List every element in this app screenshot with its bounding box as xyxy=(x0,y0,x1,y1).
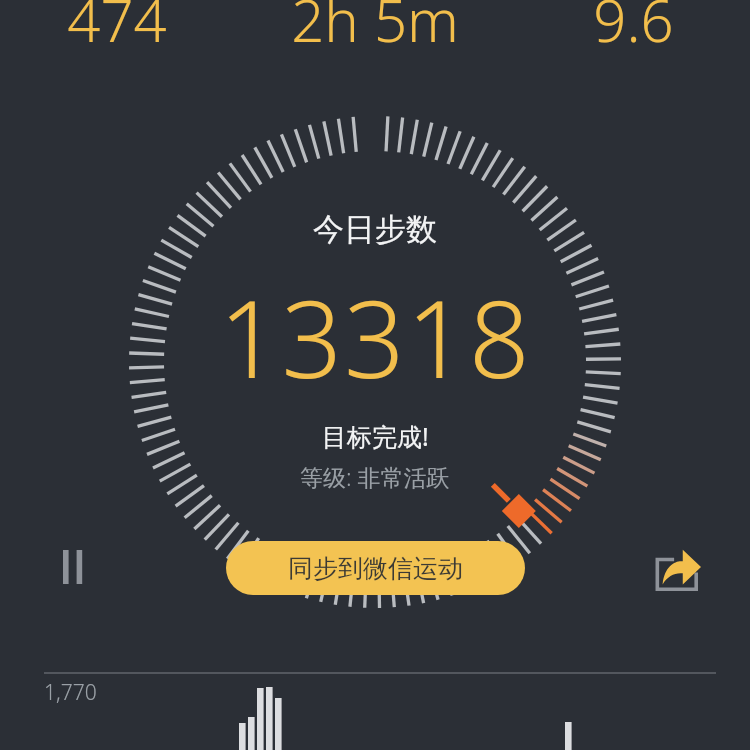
button[interactable]: 同步到微信运动 xyxy=(226,541,525,595)
staticText: 1,770 xyxy=(44,678,97,707)
staticText: 13318 xyxy=(219,265,532,409)
button[interactable]: 474 xyxy=(17,0,217,44)
staticText: 目标完成! xyxy=(322,419,429,453)
staticText: 474 xyxy=(67,0,167,44)
button[interactable]: Share xyxy=(645,538,709,602)
staticText: 今日步数 xyxy=(313,210,437,249)
staticText: 等级: 非常活跃 xyxy=(300,461,450,492)
button[interactable]: Pause xyxy=(42,536,104,598)
staticText: 2h 5m xyxy=(291,0,459,44)
staticText: 9.6 xyxy=(593,0,674,44)
staticText: 同步到微信运动 xyxy=(288,553,463,584)
button[interactable]: 2h 5m xyxy=(275,0,475,44)
button[interactable]: 9.6 xyxy=(533,0,733,44)
